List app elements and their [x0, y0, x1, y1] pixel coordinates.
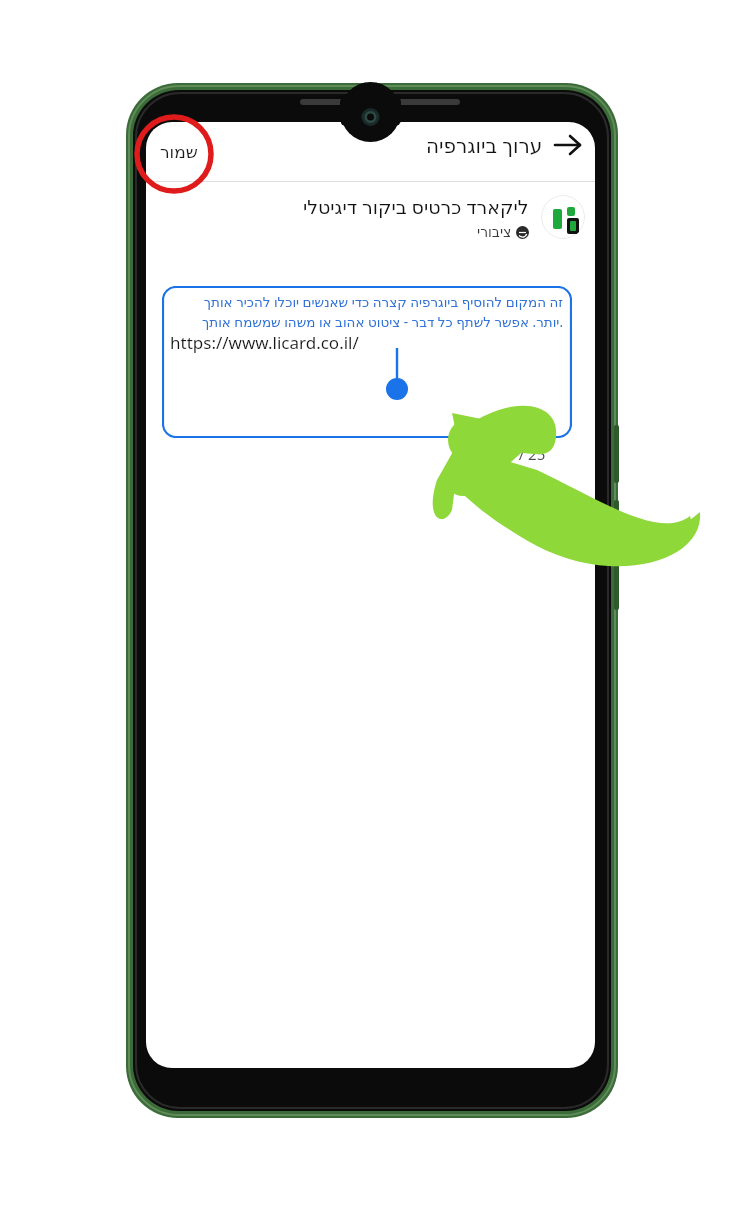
staticText: ליקארד כרטיס ביקור דיגיטלי — [303, 194, 529, 220]
staticText: 101 / 25 — [489, 444, 546, 464]
staticText: https://www.licard.co.il/ — [170, 331, 563, 354]
button[interactable]: שמור — [146, 122, 595, 181]
staticText: זה המקום להוסיף ביוגרפיה קצרה כדי שאנשים… — [170, 293, 563, 331]
button[interactable]: זה המקום להוסיף ביוגרפיה קצרה כדי שאנשים… — [162, 286, 572, 438]
button[interactable]: Back — [553, 130, 583, 160]
staticText: ציבורי — [477, 224, 512, 240]
button[interactable] — [541, 195, 585, 239]
staticText: ערוך ביוגרפיה — [426, 132, 543, 159]
staticText: שמור — [160, 142, 198, 162]
